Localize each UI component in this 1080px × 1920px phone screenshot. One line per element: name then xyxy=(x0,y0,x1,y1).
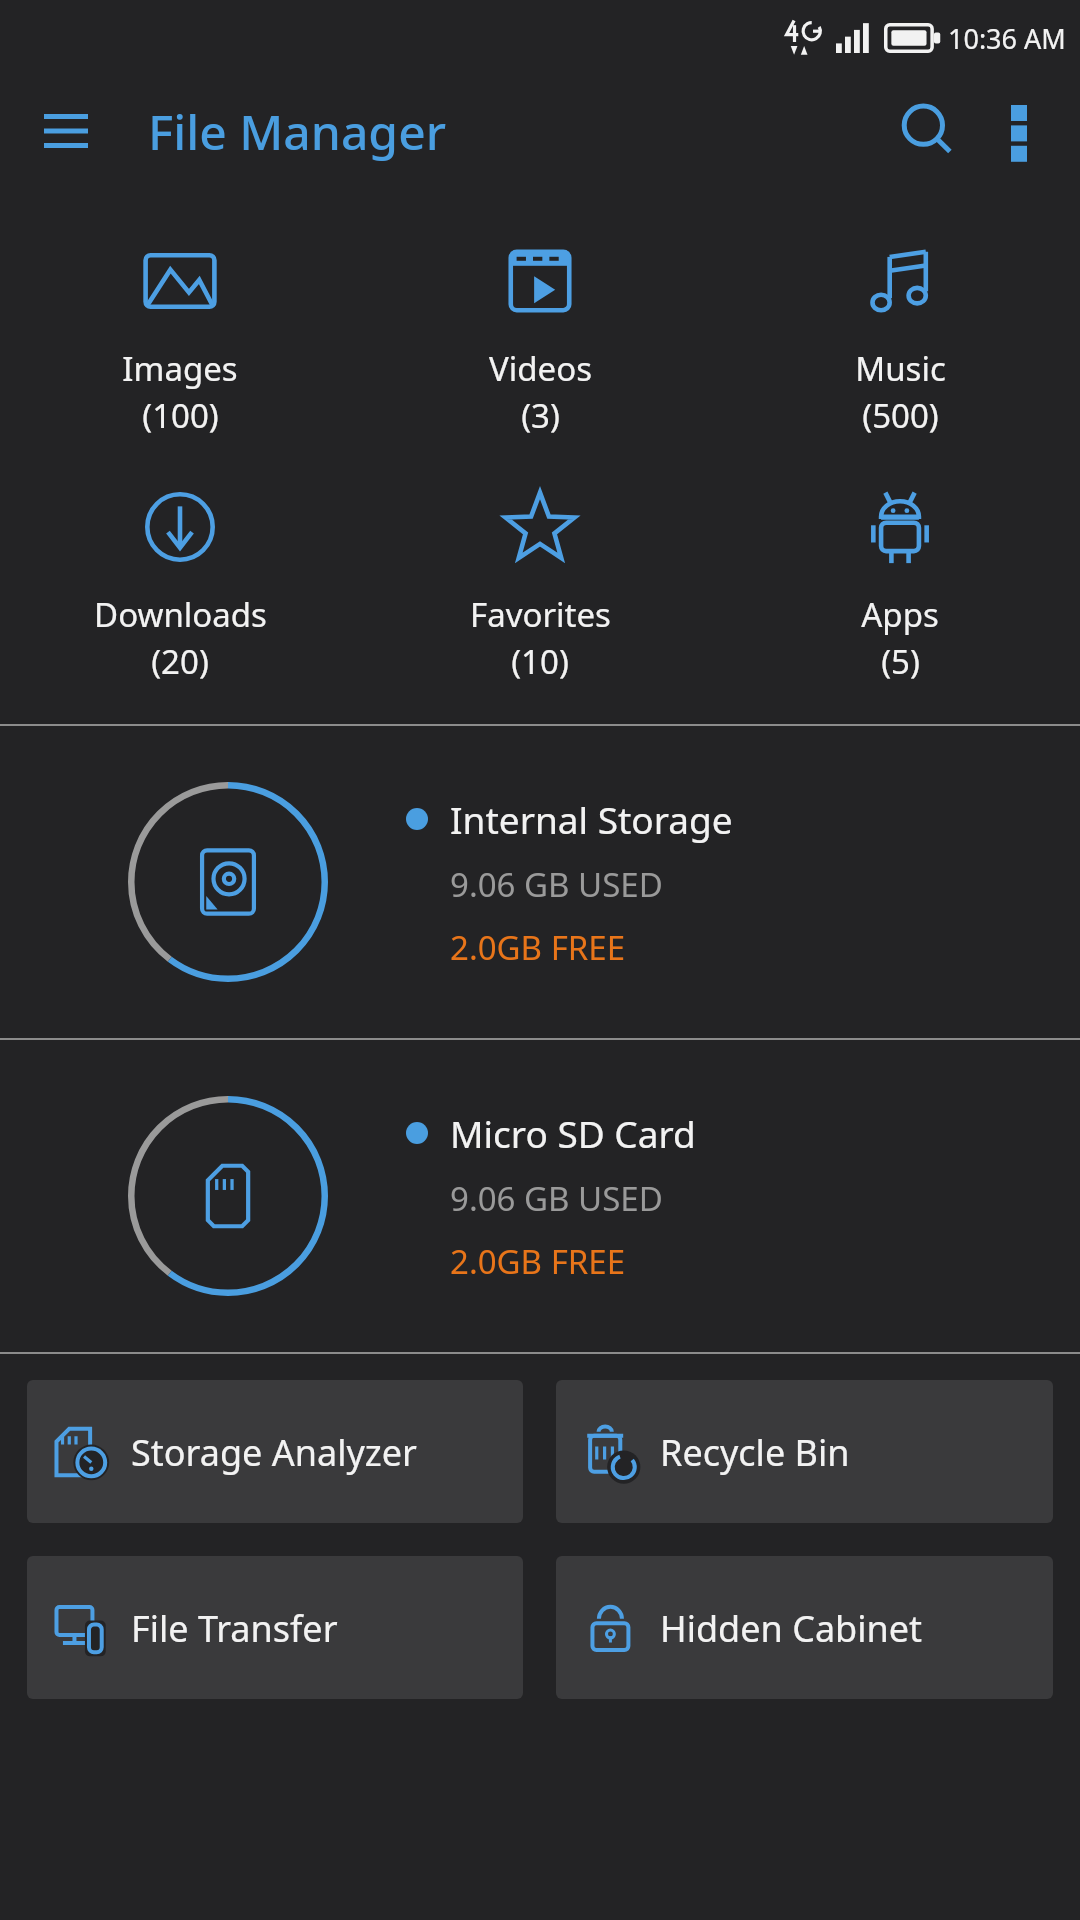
staticText: File Transfer xyxy=(131,1604,338,1653)
staticText: (500) xyxy=(862,393,939,438)
staticText: (20) xyxy=(151,639,209,684)
staticText: Storage Analyzer xyxy=(131,1428,417,1477)
button[interactable]: Apps xyxy=(720,480,1080,688)
staticText: Videos xyxy=(489,346,592,391)
staticText: Internal Storage xyxy=(450,794,733,844)
button[interactable]: Music xyxy=(720,234,1080,442)
button[interactable]: File Transfer xyxy=(27,1556,523,1699)
staticText: Music xyxy=(855,346,946,391)
staticText: Recycle Bin xyxy=(660,1428,850,1477)
staticText: 2.0GB FREE xyxy=(450,1239,625,1284)
staticText: (10) xyxy=(511,639,569,684)
staticText: 10:36 AM xyxy=(948,20,1066,57)
staticText: Micro SD Card xyxy=(450,1108,696,1158)
button[interactable]: Hidden Cabinet xyxy=(556,1556,1053,1699)
button[interactable]: Favorites xyxy=(360,480,720,688)
staticText: Downloads xyxy=(94,592,267,637)
button[interactable]: Recycle Bin xyxy=(556,1380,1053,1523)
staticText: Apps xyxy=(861,592,939,637)
staticText: (5) xyxy=(881,639,920,684)
button[interactable]: Search xyxy=(880,83,976,179)
staticText: (100) xyxy=(142,393,219,438)
button[interactable]: Storage Analyzer xyxy=(27,1380,523,1523)
button[interactable]: Videos xyxy=(360,234,720,442)
button[interactable]: More options xyxy=(976,88,1062,174)
button[interactable]: Micro SD Card xyxy=(0,1040,1080,1352)
staticText: File Manager xyxy=(148,99,446,164)
staticText: Images xyxy=(122,346,238,391)
button[interactable]: Internal Storage xyxy=(0,726,1080,1038)
staticText: 9.06 GB USED xyxy=(450,1176,663,1221)
button[interactable]: Images xyxy=(0,234,360,442)
button[interactable]: Downloads xyxy=(0,480,360,688)
staticText: Favorites xyxy=(470,592,611,637)
staticText: Hidden Cabinet xyxy=(660,1604,923,1653)
staticText: 9.06 GB USED xyxy=(450,862,663,907)
button[interactable]: Open navigation menu xyxy=(28,93,104,169)
staticText: (3) xyxy=(521,393,560,438)
staticText: 2.0GB FREE xyxy=(450,925,625,970)
